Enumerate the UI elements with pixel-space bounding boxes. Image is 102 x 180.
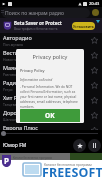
button[interactable]: Favorite bbox=[89, 125, 100, 136]
staticText: Ваш трафик и безопасность bbox=[14, 27, 58, 31]
button[interactable]: Favorite bbox=[89, 95, 100, 106]
button[interactable]: Favorite bbox=[89, 80, 100, 91]
staticText: Европа Плюс bbox=[3, 124, 38, 131]
staticText: Ретро bbox=[3, 87, 13, 92]
staticText: Каталог бесплатных программ bbox=[44, 163, 92, 167]
staticText: P bbox=[4, 155, 9, 166]
button[interactable]: Маяк bbox=[3, 63, 100, 78]
staticText: 20:43 bbox=[89, 1, 100, 6]
staticText: Танцевальное bbox=[3, 102, 27, 107]
button[interactable]: Авторадио bbox=[3, 33, 100, 48]
staticText: Авторадио bbox=[3, 34, 32, 41]
staticText: Beta Saver от Protect bbox=[14, 20, 62, 26]
button[interactable]: Установить bbox=[72, 22, 95, 30]
staticText: Установить bbox=[73, 24, 94, 29]
staticText: Хит FM bbox=[3, 94, 22, 101]
staticText: Поп-музыка bbox=[3, 132, 23, 137]
button[interactable]: Favorite bbox=[89, 50, 100, 61]
staticText: Privacy Policy bbox=[20, 68, 45, 73]
button[interactable]: Хит FM bbox=[3, 93, 100, 108]
staticText: Information collected bbox=[20, 77, 53, 82]
button[interactable]: Account bbox=[92, 9, 99, 16]
button[interactable]: Радио 7 bbox=[3, 78, 100, 93]
staticText: Маяк bbox=[3, 64, 18, 71]
staticText: FREESOFT bbox=[42, 164, 102, 180]
staticText: Разговорное bbox=[3, 72, 24, 77]
staticText: Поп-музыка bbox=[3, 42, 23, 47]
button[interactable]: Beta Saver от Protect bbox=[3, 18, 99, 33]
other: Menu bbox=[1, 10, 4, 13]
button[interactable]: Европа Плюс bbox=[3, 123, 100, 138]
staticText: Шансон bbox=[3, 117, 17, 122]
staticText: OK bbox=[45, 111, 55, 120]
button[interactable]: Favorite bbox=[89, 110, 100, 121]
staticText: Вести FM bbox=[3, 49, 28, 56]
staticText: Новости bbox=[3, 57, 17, 62]
button[interactable]: Favorite bbox=[73, 139, 86, 152]
button[interactable]: Поиск по жанрам радио bbox=[2, 8, 90, 18]
staticText: Дорожное радио bbox=[3, 109, 49, 116]
staticText: Privacy policy bbox=[20, 53, 80, 60]
staticText: Каталог бесплатных программ bbox=[13, 156, 52, 160]
button[interactable]: Favorite bbox=[89, 35, 100, 46]
button[interactable]: OK bbox=[20, 109, 80, 122]
staticText: - Personal Information. We do NOT collec… bbox=[20, 85, 80, 109]
staticText: Юмор FM bbox=[3, 142, 27, 149]
button[interactable]: Дорожное радио bbox=[3, 108, 100, 123]
button[interactable]: Вести FM bbox=[3, 48, 100, 63]
staticText: Поиск по жанрам радио bbox=[5, 10, 64, 17]
staticText: Радио 7 bbox=[3, 79, 24, 86]
button[interactable]: Pause bbox=[88, 139, 101, 152]
button[interactable]: Favorite bbox=[89, 65, 100, 76]
